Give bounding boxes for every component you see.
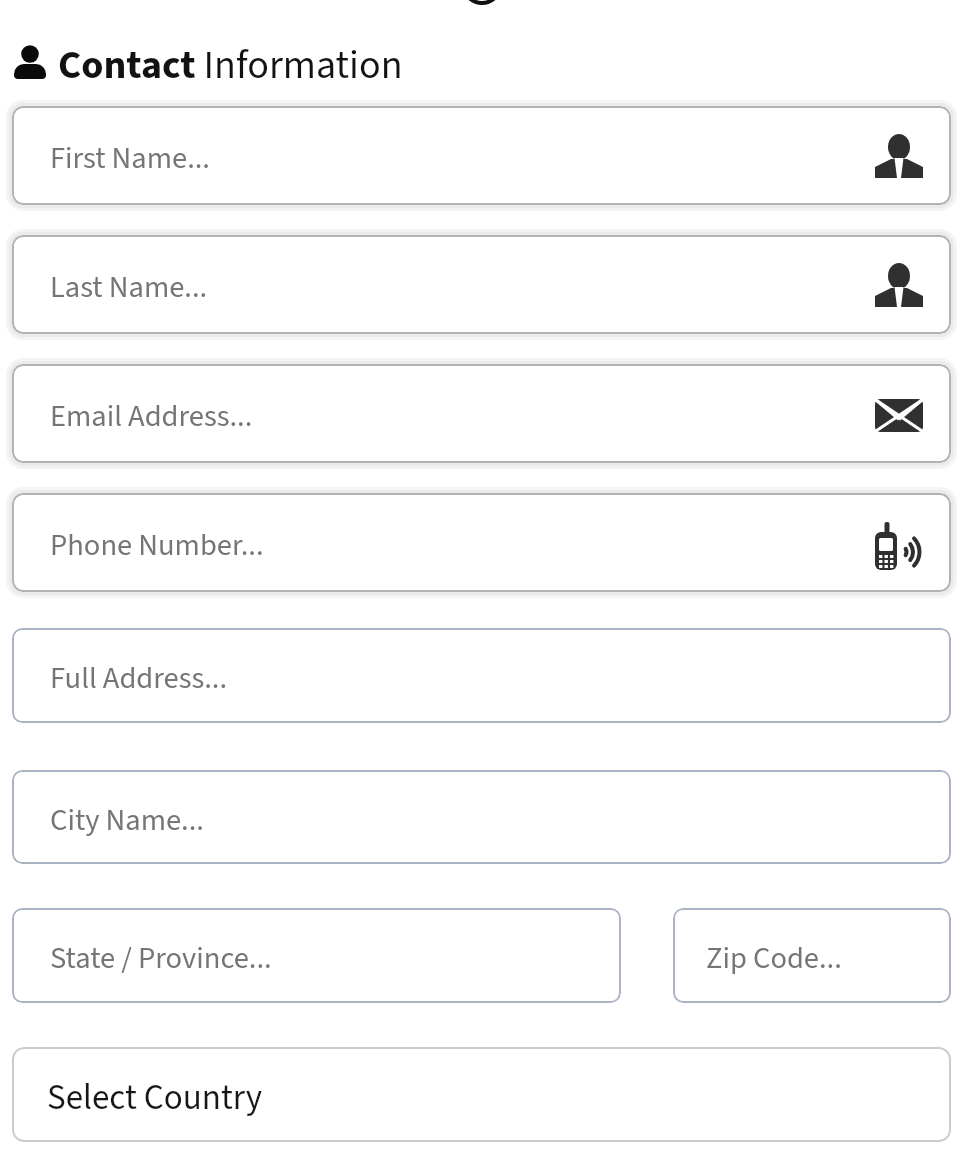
- staticText: City Name...: [50, 799, 204, 842]
- staticText: State / Province...: [50, 937, 272, 980]
- staticText: Contact Information: [58, 37, 403, 94]
- staticText: Zip Code...: [706, 937, 842, 980]
- button[interactable]: Last Name...: [6, 229, 957, 340]
- button[interactable]: City Name...: [12, 770, 951, 864]
- button[interactable]: Full Address...: [12, 628, 951, 723]
- button[interactable]: Select Country: [12, 1047, 951, 1142]
- staticText: Last Name...: [50, 266, 208, 309]
- button[interactable]: First Name...: [6, 100, 957, 211]
- button[interactable]: Zip Code...: [673, 908, 951, 1003]
- staticText: Email Address...: [50, 395, 253, 438]
- button[interactable]: Phone Number...: [6, 487, 957, 598]
- staticText: First Name...: [50, 137, 210, 180]
- button[interactable]: State / Province...: [12, 908, 621, 1003]
- button[interactable]: Email Address...: [6, 358, 957, 469]
- staticText: Select Country: [47, 1073, 263, 1123]
- staticText: Full Address...: [50, 657, 227, 700]
- staticText: Phone Number...: [50, 524, 264, 567]
